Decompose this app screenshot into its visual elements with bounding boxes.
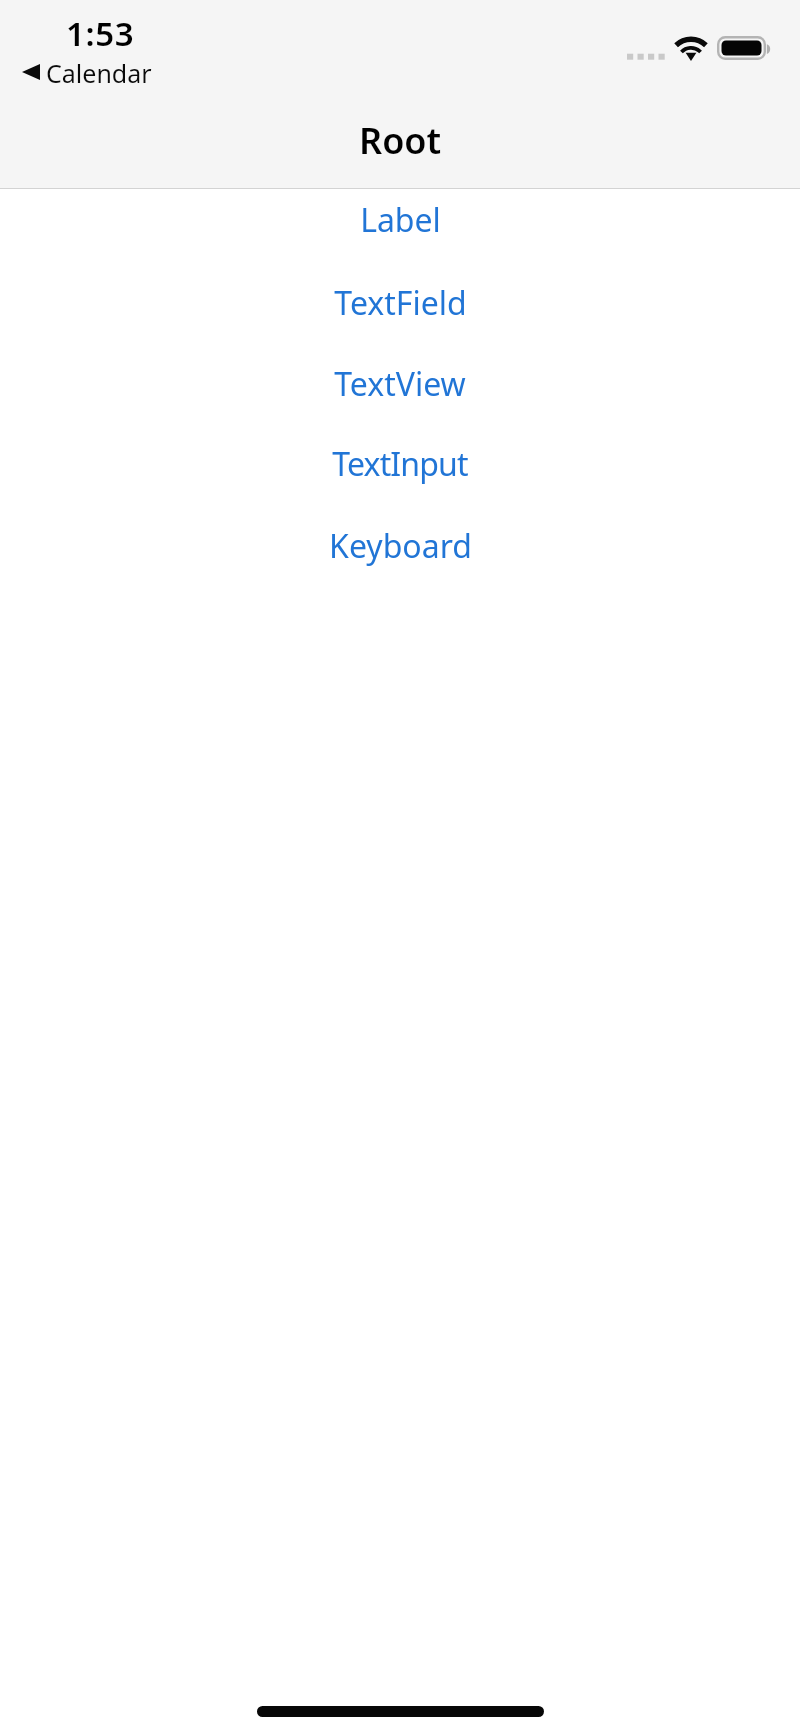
button[interactable]: Keyboard — [0, 505, 800, 586]
staticText: TextInput — [332, 442, 468, 486]
staticText: 1:53 — [66, 11, 135, 56]
staticText: TextView — [334, 362, 466, 406]
button[interactable]: TextInput — [0, 423, 800, 504]
staticText: Label — [360, 198, 441, 242]
staticText: Calendar — [46, 56, 152, 90]
staticText: Root — [359, 116, 442, 165]
button[interactable]: Back to Calendar — [21, 54, 152, 88]
button[interactable]: TextView — [0, 343, 800, 424]
staticText: Keyboard — [329, 524, 472, 568]
staticText: TextField — [334, 281, 467, 325]
button[interactable]: Label — [0, 179, 800, 260]
button[interactable]: TextField — [0, 262, 800, 343]
